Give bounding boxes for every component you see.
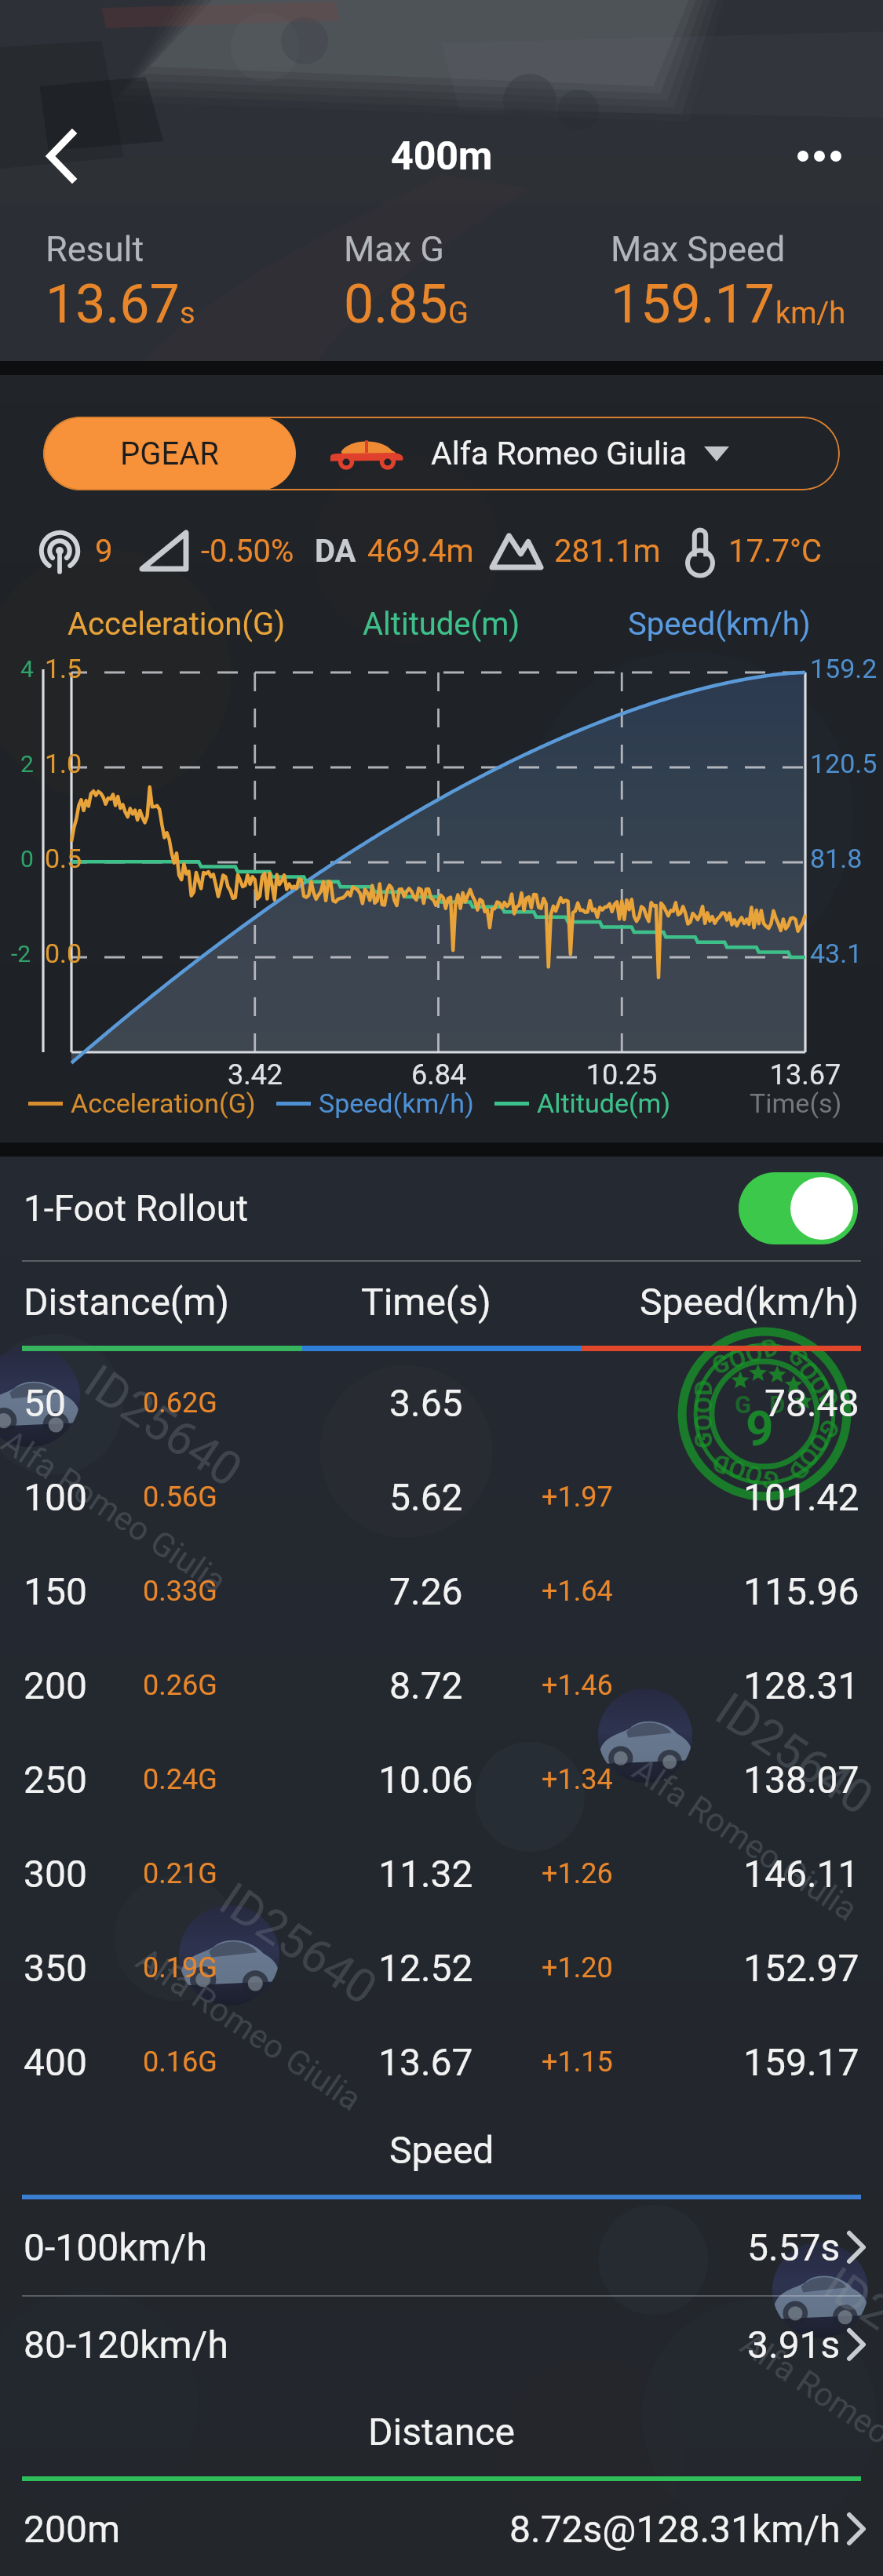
staticText: 0.62G <box>143 1386 217 1419</box>
staticText: Alfa Romeo Giulia <box>129 1940 369 2119</box>
staticText: Max Speed <box>611 228 786 270</box>
staticText: 12.52 <box>378 1946 473 1990</box>
staticText: 0.0 <box>45 938 82 969</box>
staticText: Speed(km/h) <box>640 1280 859 1324</box>
staticText: Acceleration(G) <box>68 606 286 643</box>
staticText: Distance(m) <box>24 1280 230 1324</box>
staticText: 7.26 <box>389 1569 463 1613</box>
staticText: 1.0 <box>45 748 82 779</box>
button[interactable]: Back <box>14 109 108 203</box>
staticText: 4 <box>20 655 34 683</box>
staticText: GOOD <box>689 1379 717 1448</box>
staticText: G <box>448 296 469 331</box>
staticText: 128.31 <box>743 1663 859 1707</box>
staticText: 43.1 <box>810 938 863 969</box>
staticText: 400 <box>24 2040 87 2084</box>
staticText: 9 <box>746 1400 774 1457</box>
staticText: km/h <box>775 296 846 331</box>
staticText: -0.50% <box>201 533 294 570</box>
staticText: 1-Foot Rollout <box>24 1187 249 1230</box>
staticText: Time(s) <box>361 1280 491 1324</box>
staticText: 78.48 <box>764 1381 859 1425</box>
staticText: 120.5 <box>810 748 878 779</box>
staticText: 0.56G <box>143 1481 217 1514</box>
staticText: +1.26 <box>542 1857 613 1890</box>
staticText: +1.46 <box>542 1669 613 1702</box>
staticText: 0.26G <box>143 1669 217 1702</box>
staticText: Acceleration(G) <box>71 1088 256 1119</box>
staticText: 0.33G <box>143 1575 217 1608</box>
staticText: 3.91s <box>747 2323 841 2366</box>
staticText: 9 <box>95 533 113 570</box>
staticText: 6.84 <box>376 1058 502 1091</box>
staticText: Alfa Romeo Giulia <box>625 1750 865 1929</box>
staticText: Result <box>46 228 144 270</box>
staticText: 159.2 <box>810 653 878 684</box>
staticText: Speed <box>389 2128 494 2172</box>
staticText: 3.65 <box>389 1381 463 1425</box>
staticText: +1.20 <box>542 1951 613 1984</box>
staticText: 250 <box>24 1758 87 1802</box>
staticText: PGEAR <box>120 435 219 472</box>
staticText: 8.72s@128.31km/h <box>509 2507 841 2551</box>
staticText: 11.32 <box>378 1852 473 1896</box>
staticText: 1.5 <box>45 653 82 684</box>
button[interactable]: PGEAR <box>43 417 840 490</box>
staticText: +1.15 <box>542 2046 613 2079</box>
staticText: s <box>180 296 195 331</box>
staticText: 13.67 <box>743 1058 868 1091</box>
staticText: Altitude(m) <box>537 1088 671 1119</box>
staticText: Altitude(m) <box>363 606 520 643</box>
staticText: Speed(km/h) <box>319 1088 474 1119</box>
staticText: 146.11 <box>743 1852 859 1896</box>
staticText: 100 <box>24 1475 87 1519</box>
staticText: 5.57s <box>747 2225 841 2269</box>
staticText: Speed(km/h) <box>628 606 811 643</box>
staticText: 10.25 <box>559 1058 684 1091</box>
staticText: ID25640 <box>814 2256 883 2400</box>
staticText: 2 <box>20 750 34 778</box>
staticText: 13.67 <box>46 273 180 336</box>
staticText: 10.06 <box>378 1758 473 1802</box>
staticText: 0.24G <box>143 1763 217 1796</box>
staticText: 152.97 <box>743 1946 859 1990</box>
staticText: ID25640 <box>706 1682 883 1826</box>
staticText: 81.8 <box>810 843 863 874</box>
staticText: GOOD <box>708 1331 784 1380</box>
staticText: 469.4m <box>367 533 474 570</box>
staticText: 159.17 <box>743 2040 859 2084</box>
button[interactable]: 1-Foot Rollout <box>0 1157 883 1260</box>
staticText: Alfa Romeo Giulia <box>0 1422 234 1601</box>
staticText: 200m <box>24 2507 121 2551</box>
staticText: 281.1m <box>554 533 661 570</box>
staticText: GOOD <box>708 1448 783 1496</box>
staticText: Time(s) <box>750 1088 842 1119</box>
staticText: 115.96 <box>743 1569 859 1613</box>
staticText: 0-100km/h <box>24 2225 207 2269</box>
button[interactable]: 80-120km/h <box>0 2297 883 2392</box>
staticText: 5.62 <box>389 1475 463 1519</box>
staticText: 0.5 <box>45 843 82 874</box>
staticText: DA <box>315 533 356 570</box>
staticText: Distance <box>368 2410 515 2454</box>
staticText: 400m <box>391 133 493 180</box>
staticText: 150 <box>24 1569 87 1613</box>
staticText: +1.97 <box>542 1481 613 1514</box>
staticText: -2 <box>11 940 31 967</box>
staticText: 138.07 <box>743 1758 859 1802</box>
staticText: 50 <box>24 1381 66 1425</box>
staticText: 0.21G <box>143 1857 217 1890</box>
staticText: +1.64 <box>542 1575 613 1608</box>
staticText: GOOD <box>782 1414 846 1487</box>
staticText: 159.17 <box>611 273 775 336</box>
staticText: GOOD <box>782 1342 846 1415</box>
button[interactable]: 200m <box>0 2481 883 2576</box>
staticText: 13.67 <box>378 2040 473 2084</box>
staticText: 8.72 <box>389 1663 463 1707</box>
staticText: 350 <box>24 1946 87 1990</box>
staticText: 0.16G <box>143 2046 217 2079</box>
button[interactable]: More options <box>772 109 867 203</box>
button[interactable]: 0-100km/h <box>0 2199 883 2295</box>
staticText: 0.85 <box>344 273 448 336</box>
staticText: Max G <box>344 228 444 270</box>
